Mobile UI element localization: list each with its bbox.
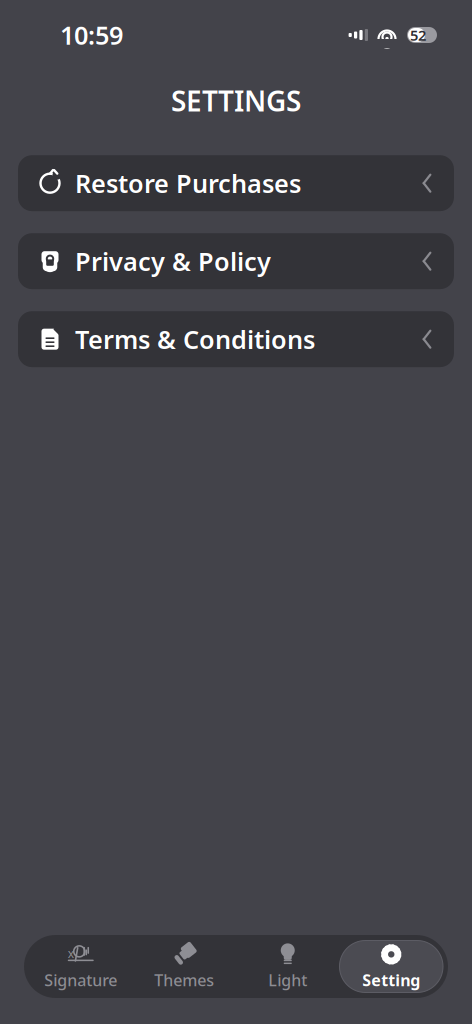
staticText: Terms & Conditions (75, 322, 315, 356)
button[interactable]: Privacy & Policy (18, 233, 454, 289)
button[interactable]: x (29, 940, 132, 992)
staticText: Setting (362, 969, 420, 991)
staticText: Privacy & Policy (75, 244, 271, 278)
staticText: Signature (44, 969, 117, 991)
staticText: Restore Purchases (75, 166, 301, 200)
staticText: SETTINGS (171, 82, 301, 119)
button[interactable]: Restore Purchases (18, 155, 454, 211)
staticText: Themes (154, 969, 214, 991)
button[interactable]: Terms & Conditions (18, 311, 454, 367)
button[interactable]: Themes (132, 940, 236, 992)
staticText: 52 (410, 25, 426, 45)
staticText: 10:59 (60, 18, 123, 52)
button[interactable]: Light (236, 940, 339, 992)
staticText: x (68, 945, 74, 961)
button[interactable]: Setting (339, 940, 443, 992)
staticText: Light (268, 969, 307, 991)
